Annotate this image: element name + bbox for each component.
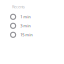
button[interactable]: 3 min: [0, 21, 64, 30]
staticText: 15 min: [20, 32, 32, 37]
button[interactable]: 15 min: [0, 30, 64, 39]
button[interactable]: 1 min: [0, 12, 64, 21]
staticText: Recents: [12, 4, 25, 9]
staticText: 1 min: [20, 14, 30, 19]
staticText: 3 min: [20, 23, 30, 28]
